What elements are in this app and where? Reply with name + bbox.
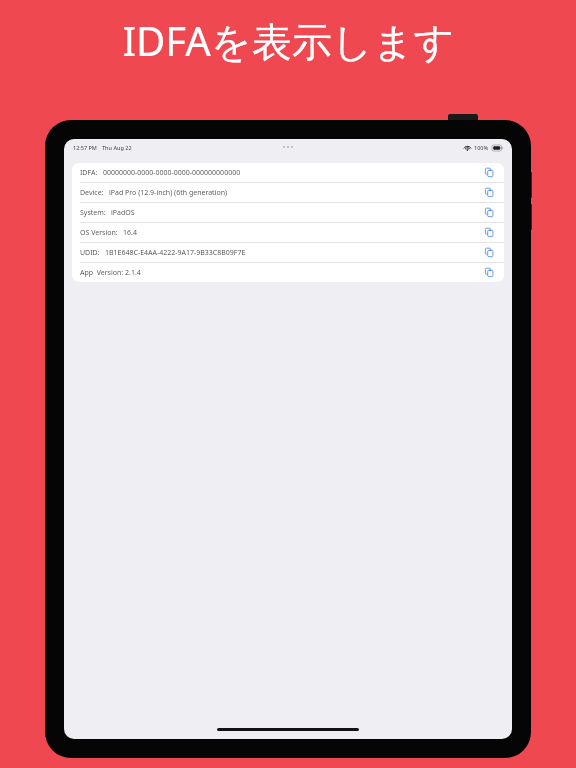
button[interactable]: App Version: 2.1.4 bbox=[72, 263, 504, 282]
staticText: System: bbox=[80, 208, 106, 218]
button[interactable]: Device: bbox=[72, 183, 504, 202]
button[interactable]: Copy bbox=[483, 266, 496, 279]
button[interactable]: Copy bbox=[483, 246, 496, 259]
staticText: Device: bbox=[80, 188, 104, 198]
button[interactable]: UDID: bbox=[72, 243, 504, 262]
staticText: iPad Pro (12.9-inch) (6th generation) bbox=[109, 188, 228, 198]
staticText: IDFAを表示します bbox=[122, 13, 455, 68]
staticText: 100% bbox=[474, 144, 489, 151]
staticText: App Version: 2.1.4 bbox=[80, 268, 141, 278]
button[interactable]: Copy bbox=[483, 226, 496, 239]
button[interactable]: Copy bbox=[483, 206, 496, 219]
button[interactable]: OS Version: bbox=[72, 223, 504, 242]
button[interactable]: Copy bbox=[483, 186, 496, 199]
staticText: 00000000-0000-0000-0000-000000000000 bbox=[103, 168, 241, 178]
button[interactable]: Copy bbox=[483, 166, 496, 179]
button[interactable]: IDFA: bbox=[72, 163, 504, 182]
staticText: IDFA: bbox=[80, 168, 98, 178]
staticText: Thu Aug 22 bbox=[102, 144, 132, 151]
staticText: OS Version: bbox=[80, 228, 118, 238]
button[interactable]: System: bbox=[72, 203, 504, 222]
staticText: 1B1E648C-E4AA-4222-9A17-9B33C8B09F7E bbox=[105, 248, 246, 258]
staticText: iPadOS bbox=[111, 208, 135, 218]
staticText: UDID: bbox=[80, 248, 100, 258]
staticText: 16.4 bbox=[123, 228, 137, 238]
staticText: 12:57 PM bbox=[73, 144, 97, 151]
